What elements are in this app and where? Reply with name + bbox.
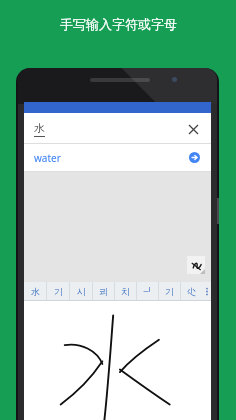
button[interactable]: More candidates — [202, 282, 211, 300]
button[interactable]: ᅴ — [137, 282, 158, 300]
button[interactable]: Handwriting area — [24, 301, 211, 420]
staticText: 시 — [77, 286, 86, 297]
staticText: 水 — [31, 286, 40, 297]
button[interactable]: Handwriting input — [187, 256, 205, 274]
button[interactable]: 기 — [159, 282, 180, 300]
button[interactable]: 시 — [70, 282, 92, 300]
staticText: 기 — [54, 286, 63, 297]
button[interactable]: 치 — [115, 282, 136, 300]
button[interactable]: 쾨 — [93, 282, 114, 300]
staticText: 水 — [34, 121, 45, 135]
button[interactable]: 기 — [47, 282, 69, 300]
staticText: ᅴ — [143, 286, 152, 297]
button[interactable]: 尐 — [181, 282, 202, 300]
button[interactable]: 水 — [24, 115, 211, 143]
button[interactable]: Clear — [185, 121, 201, 137]
staticText: 手写输入字符或字母 — [60, 16, 177, 32]
staticText: 쾨 — [99, 286, 108, 297]
staticText: 尐 — [187, 286, 196, 297]
staticText: 치 — [121, 286, 130, 297]
staticText: water — [34, 151, 61, 165]
button[interactable]: 水 — [24, 282, 46, 300]
staticText: 기 — [165, 286, 174, 297]
button[interactable]: water — [24, 144, 211, 171]
button[interactable]: Go — [188, 151, 201, 164]
